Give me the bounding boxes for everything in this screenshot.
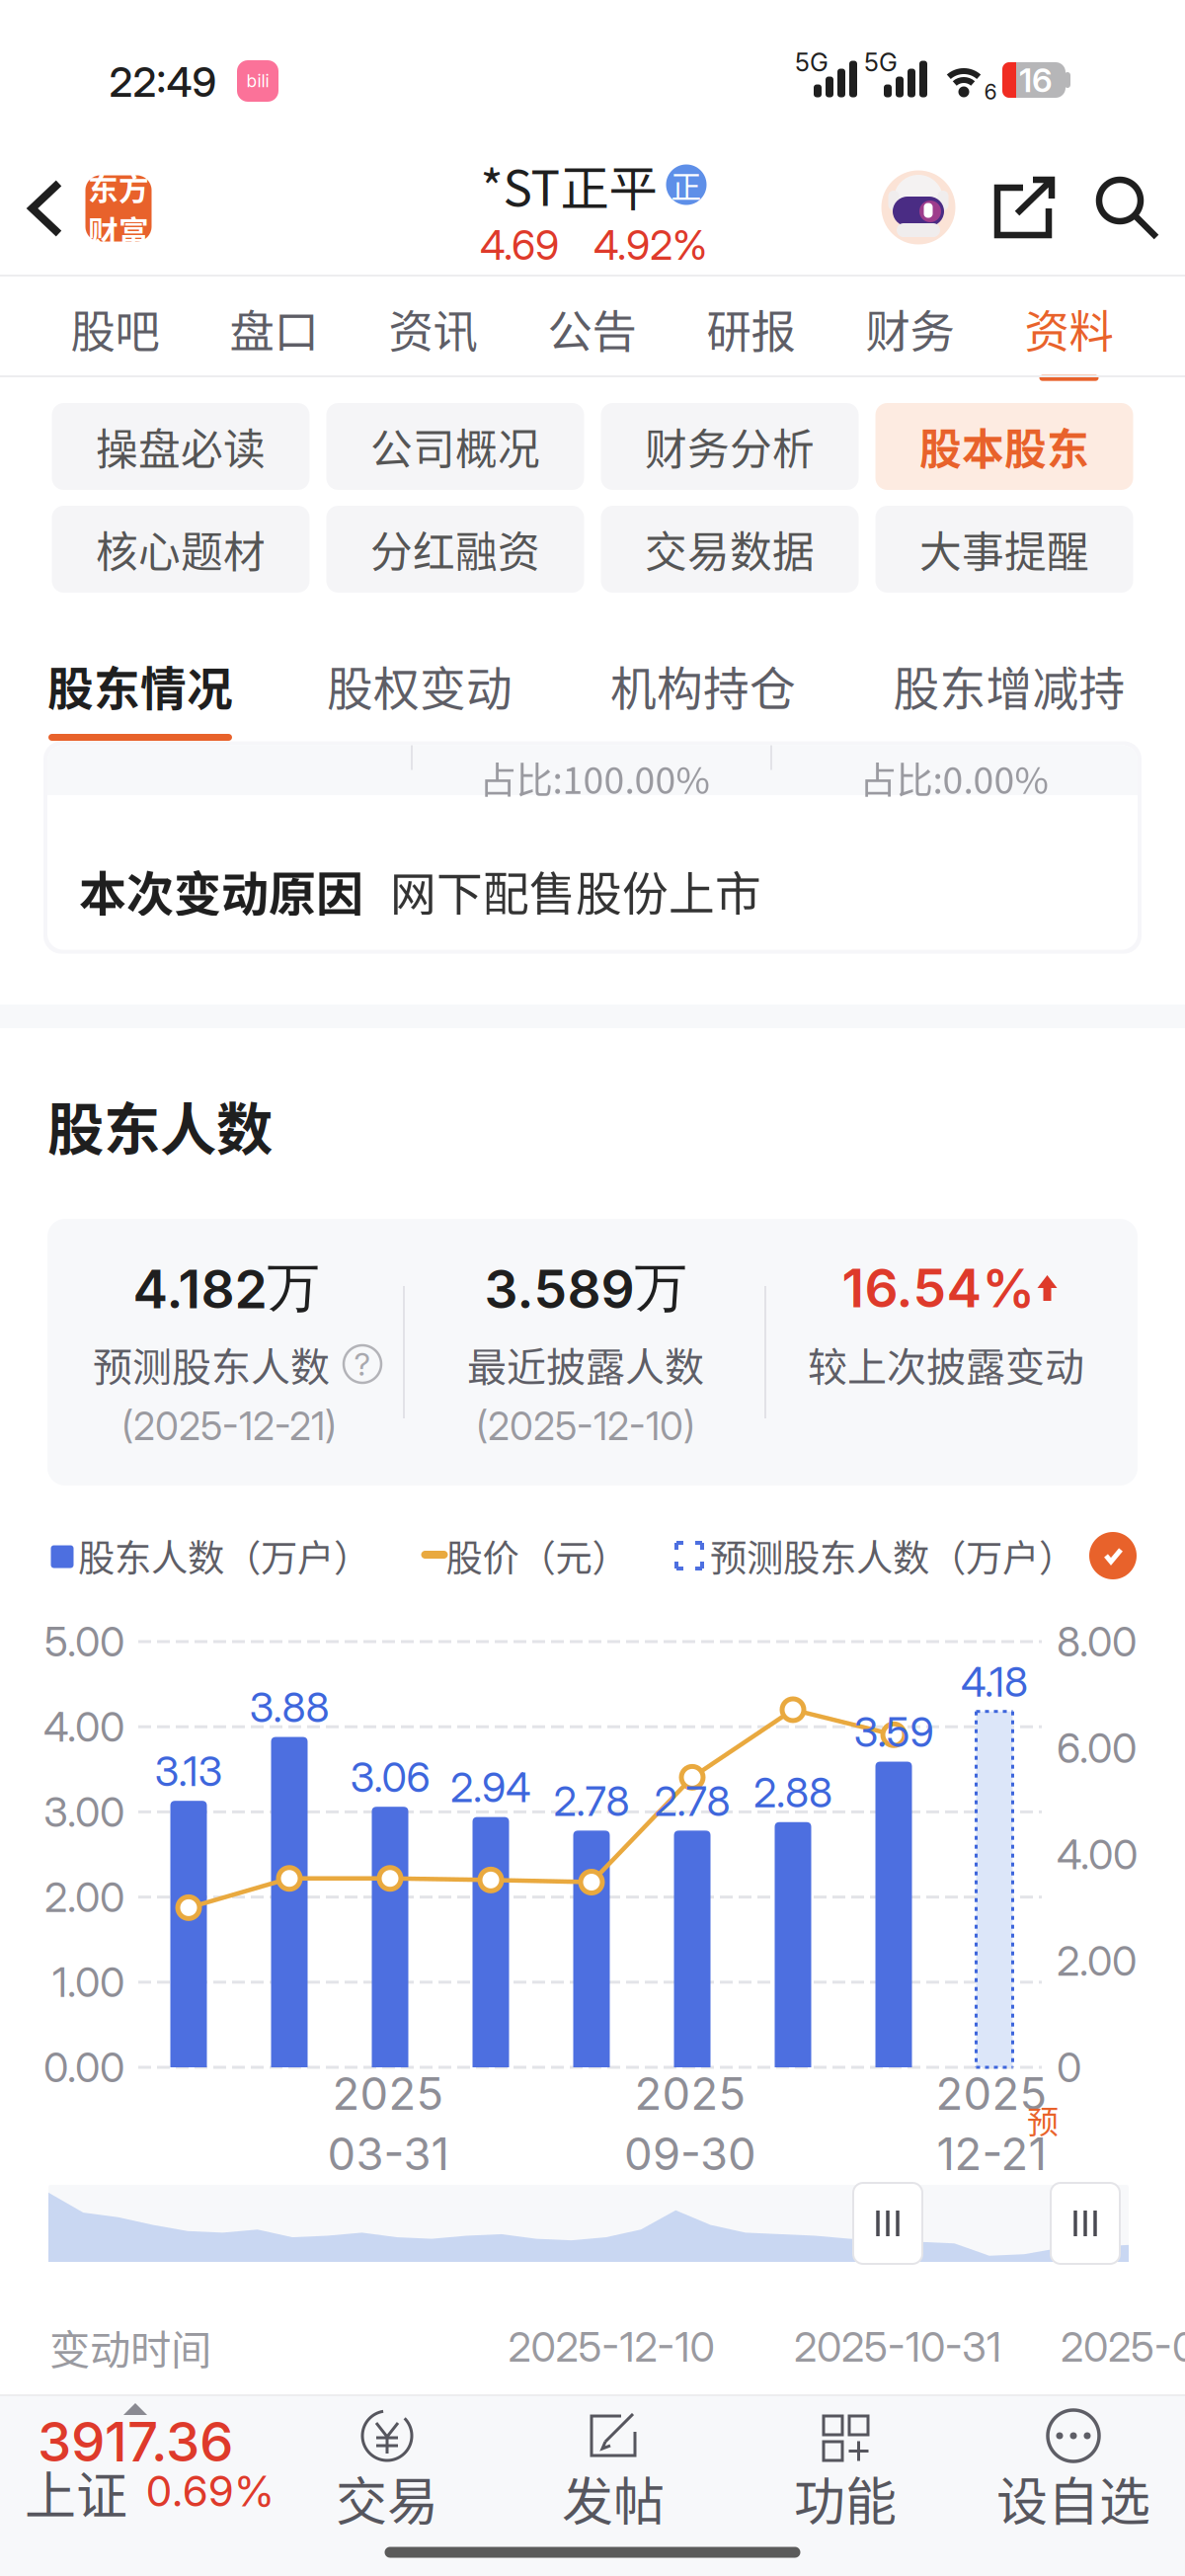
button[interactable]: 公司概况 xyxy=(326,403,584,490)
staticText: 5G xyxy=(864,47,898,77)
staticText: 4.00 xyxy=(1057,1830,1138,1879)
staticText: 股东增减持 xyxy=(893,652,1125,719)
staticText: 2.78 xyxy=(654,1776,730,1826)
button[interactable]: 股东情况 xyxy=(12,661,269,775)
staticText: 12-21 xyxy=(937,2127,1046,2181)
button[interactable]: 交易 xyxy=(288,2404,486,2527)
button[interactable]: Back xyxy=(16,164,164,253)
staticText: 公告 xyxy=(548,296,636,361)
button[interactable]: 股权变动 xyxy=(291,661,548,775)
staticText: bili xyxy=(246,71,269,91)
staticText: 0.69% xyxy=(146,2466,275,2517)
button[interactable]: 资料 xyxy=(989,279,1148,373)
button[interactable]: 股本股东 xyxy=(875,403,1133,490)
staticText: 6 xyxy=(984,79,997,105)
staticText: 16 xyxy=(1019,60,1053,100)
button[interactable]: 核心题材 xyxy=(52,506,310,593)
staticText: 22:49 xyxy=(109,57,217,107)
staticText: 4.18 xyxy=(961,1657,1028,1707)
staticText: 财富 xyxy=(88,208,149,252)
staticText: 股东人数（万户） xyxy=(78,1529,370,1582)
button[interactable]: 盘口 xyxy=(195,279,354,373)
staticText: 股权变动 xyxy=(327,652,513,719)
staticText: 股本股东 xyxy=(919,416,1089,477)
staticText: 交易 xyxy=(336,2461,438,2535)
button[interactable]: Share xyxy=(993,178,1055,239)
staticText: 较上次披露变动 xyxy=(808,1335,1084,1393)
button[interactable]: 功能 xyxy=(747,2404,944,2527)
staticText: 网下配售股份上市 xyxy=(390,857,761,924)
staticText: 4.69 xyxy=(480,220,559,270)
staticText: 3.06 xyxy=(350,1752,430,1802)
staticText: 机构持仓 xyxy=(610,652,796,719)
staticText: 最近披露人数 xyxy=(467,1335,704,1393)
button[interactable]: 分红融资 xyxy=(326,506,584,593)
staticText: 资讯 xyxy=(389,296,477,361)
button[interactable]: 发帖 xyxy=(514,2404,712,2527)
staticText: 核心题材 xyxy=(96,519,266,580)
button[interactable]: 3917.36 xyxy=(0,2422,296,2548)
button[interactable]: Search xyxy=(1096,177,1159,240)
staticText: 发帖 xyxy=(562,2461,665,2535)
staticText: 8.00 xyxy=(1057,1617,1137,1666)
staticText: 6.00 xyxy=(1057,1723,1137,1773)
staticText: 2.00 xyxy=(44,1872,124,1922)
staticText: 本次变动原因 xyxy=(79,856,363,925)
button[interactable]: 资讯 xyxy=(354,279,513,373)
staticText: 2.94 xyxy=(450,1763,531,1812)
button[interactable]: Toggle forecast xyxy=(1089,1532,1137,1579)
staticText: 预测股东人数 xyxy=(93,1335,330,1393)
button[interactable]: 交易数据 xyxy=(601,506,859,593)
staticText: 预测股东人数（万户） xyxy=(710,1529,1075,1582)
staticText: 4.182万 xyxy=(133,1255,319,1321)
staticText: 预 xyxy=(1027,2097,1059,2142)
staticText: 股价（元） xyxy=(446,1529,629,1582)
button[interactable]: 操盘必读 xyxy=(52,403,310,490)
staticText: 3917.36 xyxy=(38,2409,233,2474)
staticText: 5G xyxy=(795,47,829,77)
staticText: 正 xyxy=(671,163,702,207)
staticText: 操盘必读 xyxy=(96,416,266,477)
button[interactable]: 财务分析 xyxy=(601,403,859,490)
staticText: 09-30 xyxy=(624,2127,756,2181)
staticText: 资料 xyxy=(1025,296,1113,361)
button[interactable]: AI assistant xyxy=(881,170,955,244)
button[interactable]: 公告 xyxy=(513,279,671,373)
staticText: 03-31 xyxy=(327,2127,449,2181)
staticText: 变动时间 xyxy=(49,2317,211,2376)
staticText: 大事提醒 xyxy=(919,519,1089,580)
staticText: 分红融资 xyxy=(370,519,540,580)
staticText: 股东情况 xyxy=(47,652,233,719)
staticText: 股东人数 xyxy=(47,1084,273,1166)
staticText: 2.78 xyxy=(553,1776,630,1826)
staticText: 1.00 xyxy=(52,1957,124,2007)
staticText: 3.00 xyxy=(43,1787,124,1837)
button[interactable]: 研报 xyxy=(671,279,830,373)
button[interactable]: 大事提醒 xyxy=(875,506,1133,593)
staticText: 0.00 xyxy=(43,2043,124,2092)
staticText: 2025 xyxy=(634,2066,746,2121)
staticText: 3.589万 xyxy=(484,1255,687,1321)
staticText: 股吧 xyxy=(71,296,159,361)
button[interactable]: 财务 xyxy=(830,279,989,373)
staticText: 2025-10-31 xyxy=(794,2322,1001,2372)
staticText: 4.00 xyxy=(43,1702,124,1751)
staticText: 功能 xyxy=(794,2461,897,2535)
button[interactable]: Range end xyxy=(1051,2183,1120,2264)
staticText: 5.00 xyxy=(44,1617,124,1666)
button[interactable]: 股东增减持 xyxy=(881,661,1138,775)
staticText: 东方 xyxy=(88,165,149,209)
staticText: 占比:0.00% xyxy=(860,751,1048,805)
staticText: 盘口 xyxy=(230,296,318,361)
staticText: 占比:100.00% xyxy=(479,751,710,805)
button[interactable]: 设自选 xyxy=(975,2404,1172,2527)
staticText: 3.59 xyxy=(854,1707,934,1757)
staticText: 2025-12-10 xyxy=(508,2322,714,2372)
button[interactable]: 股吧 xyxy=(36,279,195,373)
staticText: 2025 xyxy=(936,2066,1047,2121)
button[interactable]: Range start xyxy=(853,2183,922,2264)
button[interactable]: 机构持仓 xyxy=(575,661,831,775)
staticText: 2025-0 xyxy=(1061,2322,1185,2372)
staticText: *ST正平 xyxy=(480,149,657,220)
staticText: (2025-12-10) xyxy=(476,1403,695,1449)
